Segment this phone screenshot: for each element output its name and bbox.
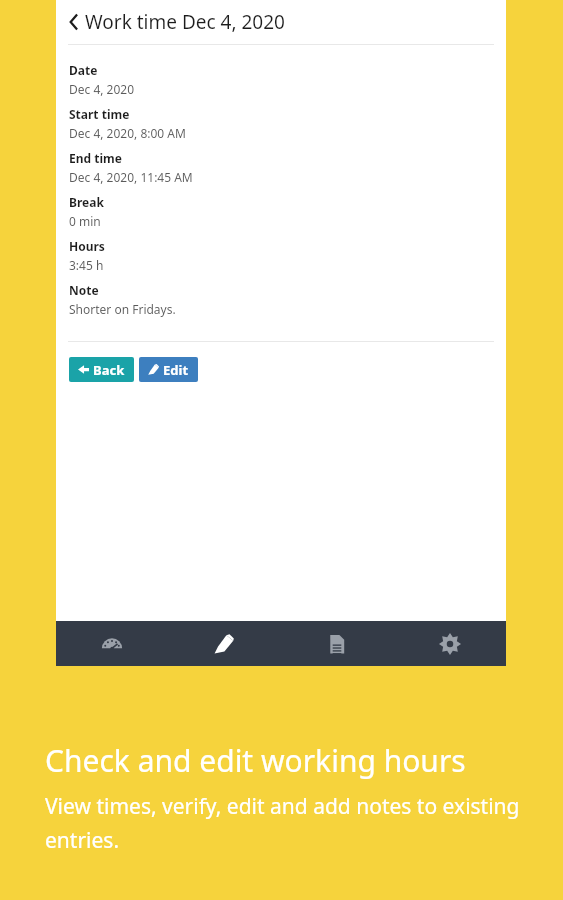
- staticText: Note: [69, 282, 99, 298]
- staticText: Shorter on Fridays.: [69, 301, 176, 317]
- staticText: Edit: [163, 361, 189, 379]
- staticText: View times, verify, edit and add notes t…: [45, 792, 555, 854]
- button[interactable]: Edit: [139, 357, 198, 382]
- button[interactable]: Work time Dec 4, 2020: [56, 0, 506, 44]
- button[interactable]: Back: [69, 357, 134, 382]
- staticText: Back: [93, 361, 125, 379]
- button[interactable]: Reports: [280, 621, 393, 666]
- button[interactable]: Settings: [393, 621, 506, 666]
- staticText: Date: [69, 62, 98, 78]
- staticText: Hours: [69, 238, 105, 254]
- staticText: Break: [69, 194, 104, 210]
- staticText: 0 min: [69, 213, 101, 229]
- staticText: Dec 4, 2020, 11:45 AM: [69, 169, 193, 185]
- staticText: End time: [69, 150, 122, 166]
- button[interactable]: Dashboard: [56, 621, 168, 666]
- staticText: Check and edit working hours: [45, 740, 466, 781]
- staticText: Dec 4, 2020: [69, 81, 135, 97]
- staticText: Dec 4, 2020, 8:00 AM: [69, 125, 186, 141]
- staticText: Work time Dec 4, 2020: [85, 9, 285, 35]
- staticText: Start time: [69, 106, 130, 122]
- button[interactable]: Edit entry: [168, 621, 280, 666]
- staticText: 3:45 h: [69, 257, 104, 273]
